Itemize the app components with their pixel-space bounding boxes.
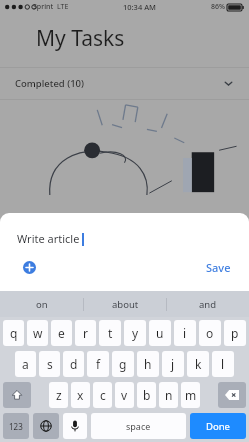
staticText: Completed (10) (15, 77, 84, 90)
staticText: a (22, 356, 29, 372)
button[interactable]: w (27, 320, 48, 346)
staticText: 123 (9, 421, 23, 432)
staticText: n (165, 387, 173, 403)
button[interactable]: d (63, 351, 84, 377)
staticText: r (83, 325, 88, 341)
button[interactable]: v (115, 382, 134, 408)
button[interactable]: c (93, 382, 112, 408)
staticText: f (96, 356, 101, 372)
staticText: Save (206, 260, 231, 275)
button[interactable]: about (84, 291, 166, 317)
button[interactable]: e (51, 320, 72, 346)
staticText: c (100, 387, 106, 403)
button[interactable]: and (167, 291, 249, 317)
staticText: on (36, 298, 48, 311)
button[interactable]: l (212, 351, 234, 377)
staticText: Done (206, 420, 230, 433)
button[interactable]: m (181, 382, 200, 408)
button[interactable]: Done (190, 413, 246, 439)
staticText: e (58, 325, 65, 341)
button[interactable]: t (99, 320, 121, 346)
button[interactable]: h (137, 351, 159, 377)
staticText: g (119, 356, 127, 372)
staticText: b (143, 387, 151, 403)
staticText: h (144, 356, 152, 372)
button[interactable]: z (49, 382, 68, 408)
staticText: m (185, 387, 197, 403)
staticText: v (121, 387, 128, 403)
staticText: y (132, 325, 139, 341)
staticText: Sprint (33, 2, 54, 12)
button[interactable]: o (199, 320, 221, 346)
button[interactable]: r (75, 320, 96, 346)
staticText: s (47, 356, 53, 372)
button[interactable]: Change language (33, 413, 59, 439)
button[interactable]: i (174, 320, 196, 346)
staticText: Write article (17, 231, 80, 246)
button[interactable]: k (187, 351, 209, 377)
staticText: q (10, 325, 18, 341)
staticText: My Tasks (36, 24, 125, 53)
button[interactable]: n (159, 382, 178, 408)
button[interactable]: Completed (10) (0, 68, 249, 99)
button[interactable]: Save (202, 256, 235, 279)
staticText: d (70, 356, 78, 372)
staticText: t (108, 325, 113, 341)
button[interactable]: s (39, 351, 60, 377)
staticText: u (156, 325, 164, 341)
staticText: l (221, 356, 225, 372)
staticText: 86% (211, 2, 225, 12)
button[interactable]: u (149, 320, 171, 346)
staticText: LTE (57, 2, 69, 12)
button[interactable]: j (162, 351, 184, 377)
staticText: p (231, 325, 239, 341)
button[interactable]: y (124, 320, 146, 346)
staticText: k (195, 356, 202, 372)
staticText: space (126, 420, 151, 432)
button[interactable]: f (87, 351, 109, 377)
staticText: z (56, 387, 62, 403)
staticText: x (77, 387, 84, 403)
staticText: w (33, 325, 43, 341)
button[interactable]: p (224, 320, 246, 346)
button[interactable]: x (71, 382, 90, 408)
staticText: and (199, 298, 217, 311)
button[interactable]: Shift (3, 382, 31, 408)
staticText: i (183, 325, 187, 341)
staticText: 10:34 AM (123, 2, 156, 12)
button[interactable]: a (15, 351, 36, 377)
button[interactable]: q (3, 320, 24, 346)
button[interactable]: Add (17, 255, 41, 279)
button[interactable]: on (0, 291, 83, 317)
staticText: o (206, 325, 214, 341)
button[interactable]: 123 (3, 413, 29, 439)
button[interactable]: Dictate (63, 413, 87, 439)
button[interactable]: space (91, 413, 186, 439)
button[interactable]: g (112, 351, 134, 377)
staticText: about (112, 298, 139, 311)
button[interactable]: b (137, 382, 156, 408)
button[interactable]: Delete (218, 382, 246, 408)
staticText: j (171, 356, 175, 372)
